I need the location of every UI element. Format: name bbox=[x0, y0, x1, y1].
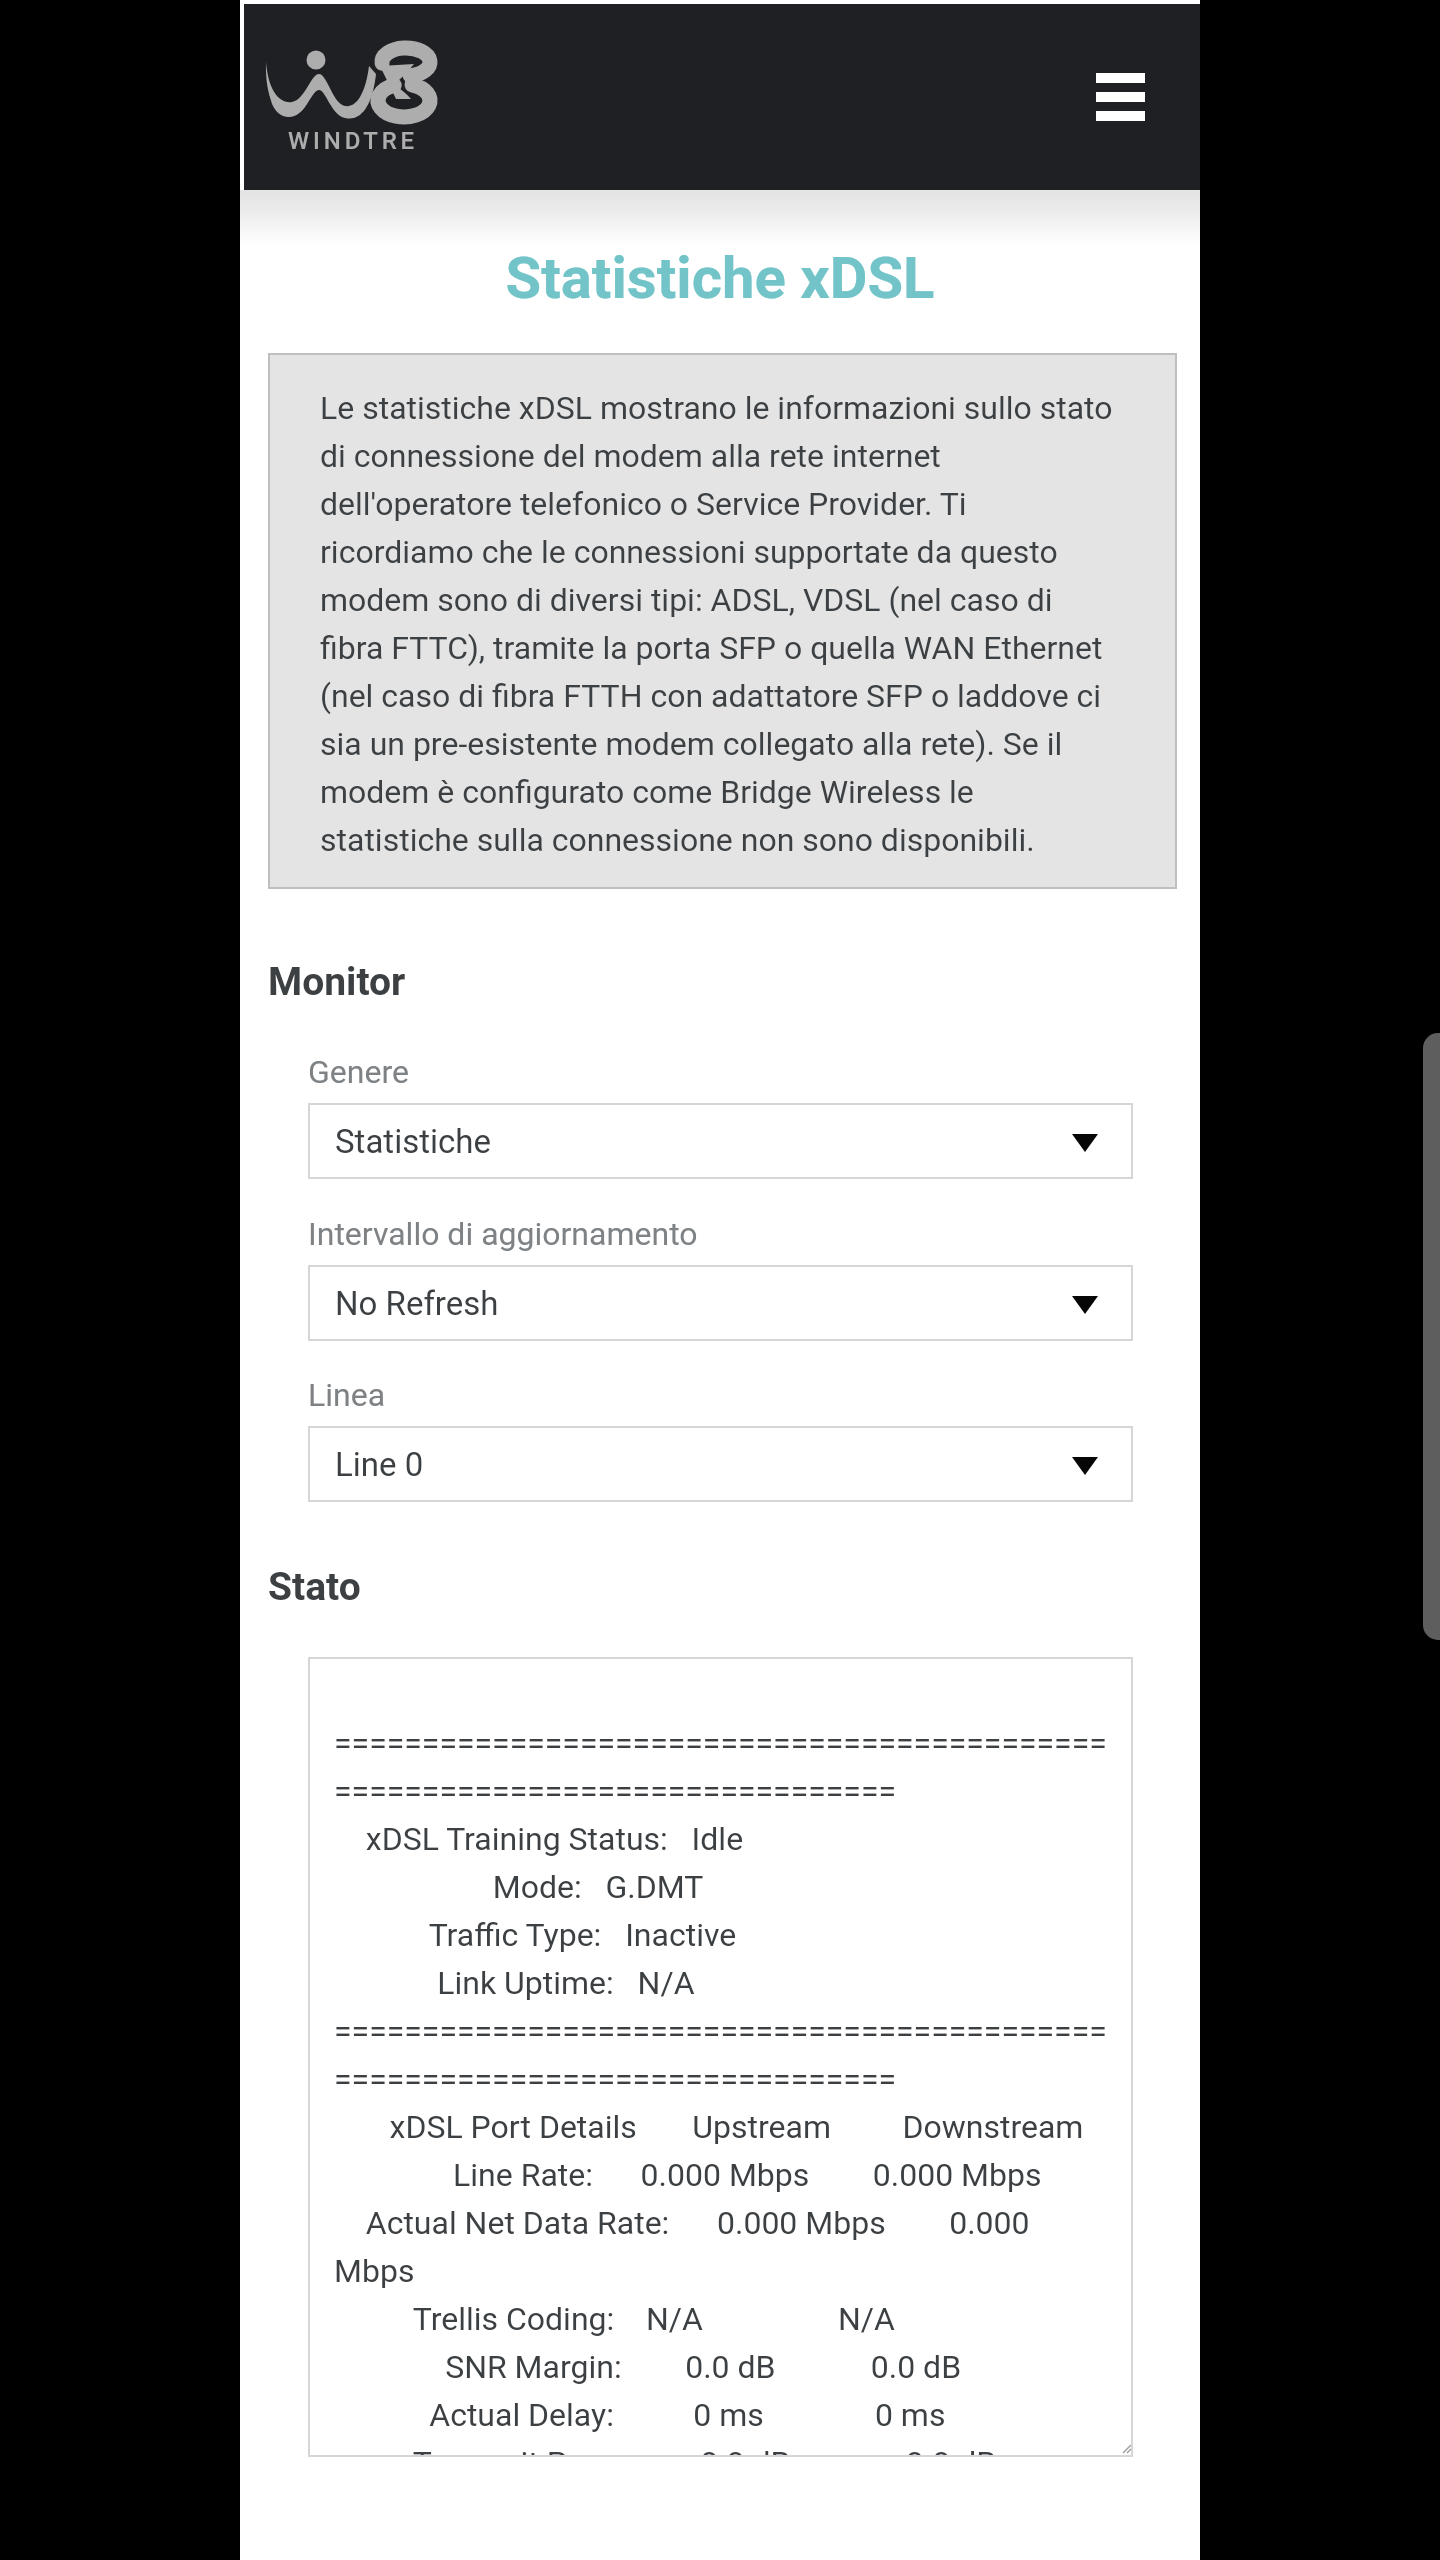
button[interactable]: No Refresh bbox=[308, 1265, 1133, 1341]
staticText: Stato bbox=[268, 1564, 361, 1610]
staticText: Line 0 bbox=[335, 1445, 424, 1484]
button[interactable]: WINDTRE home bbox=[264, 36, 454, 166]
staticText: Intervallo di aggiornamento bbox=[308, 1215, 698, 1253]
staticText: Linea bbox=[308, 1376, 386, 1414]
button[interactable]: ========================================… bbox=[308, 1657, 1133, 2457]
button[interactable]: Line 0 bbox=[308, 1426, 1133, 1502]
staticText: Le statistiche xDSL mostrano le informaz… bbox=[320, 389, 1120, 858]
staticText: Genere bbox=[308, 1053, 409, 1091]
staticText: No Refresh bbox=[335, 1284, 499, 1323]
staticText: ========================================… bbox=[334, 1724, 1107, 2457]
staticText: Monitor bbox=[268, 959, 406, 1005]
button[interactable]: Menu bbox=[1070, 44, 1170, 150]
staticText: Statistiche bbox=[335, 1122, 491, 1161]
staticText: WINDTRE bbox=[288, 127, 419, 155]
staticText: Statistiche xDSL bbox=[240, 244, 1200, 312]
button[interactable]: Statistiche bbox=[308, 1103, 1133, 1179]
